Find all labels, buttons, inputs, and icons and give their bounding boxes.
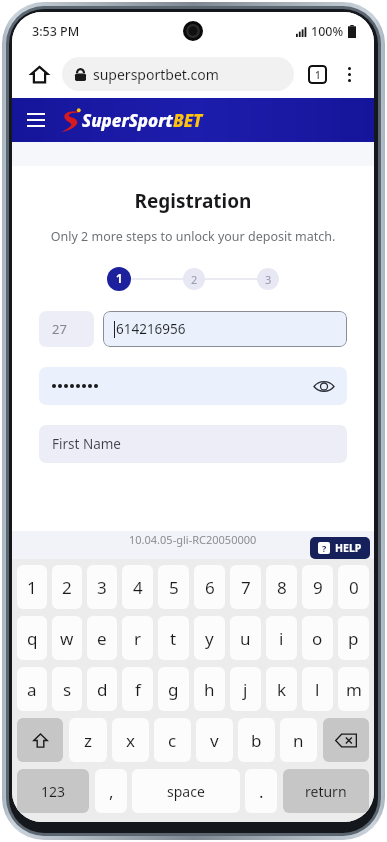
- button[interactable]: t: [158, 616, 189, 660]
- staticText: z: [84, 729, 92, 752]
- button[interactable]: return: [283, 769, 369, 813]
- button[interactable]: Home: [22, 57, 56, 91]
- staticText: Only 2 more steps to unlock your deposit…: [12, 228, 374, 245]
- button[interactable]: 4: [122, 565, 153, 609]
- button[interactable]: Menu: [20, 104, 52, 136]
- button[interactable]: More options: [334, 59, 364, 89]
- button[interactable]: 3: [87, 565, 117, 609]
- button[interactable]: w: [52, 616, 82, 660]
- staticText: First Name: [52, 435, 121, 453]
- button[interactable]: p: [338, 616, 369, 660]
- button[interactable]: 1: [17, 565, 47, 609]
- staticText: return: [305, 782, 347, 801]
- staticText: HELP: [335, 541, 362, 555]
- button[interactable]: s: [52, 667, 82, 711]
- staticText: 1: [315, 68, 321, 82]
- staticText: .: [259, 780, 264, 803]
- staticText: BET: [173, 109, 203, 132]
- staticText: l: [315, 678, 320, 701]
- staticText: supersportbet.com: [93, 65, 219, 84]
- button[interactable]: 5: [158, 565, 189, 609]
- staticText: x: [126, 729, 135, 752]
- staticText: 1: [27, 576, 37, 599]
- button[interactable]: q: [17, 616, 47, 660]
- button[interactable]: 27: [39, 311, 94, 347]
- button[interactable]: space: [132, 769, 240, 813]
- staticText: b: [251, 729, 262, 752]
- staticText: d: [97, 678, 108, 701]
- button[interactable]: 2: [183, 268, 205, 290]
- staticText: 3: [97, 576, 107, 599]
- staticText: c: [168, 729, 177, 752]
- staticText: w: [60, 627, 74, 650]
- staticText: 1: [116, 271, 123, 287]
- staticText: u: [240, 627, 251, 650]
- button[interactable]: 7: [230, 565, 261, 609]
- staticText: r: [134, 627, 142, 650]
- button[interactable]: Tabs, 1 open: [300, 57, 334, 91]
- button[interactable]: z: [69, 718, 107, 762]
- staticText: n: [293, 729, 304, 752]
- button[interactable]: v: [196, 718, 233, 762]
- button[interactable]: supersportbet.com: [62, 57, 294, 91]
- button[interactable]: n: [280, 718, 317, 762]
- button[interactable]: First Name: [39, 425, 347, 463]
- button[interactable]: 614216956: [103, 311, 347, 347]
- staticText: 6: [205, 576, 215, 599]
- button[interactable]: Shift: [17, 718, 63, 762]
- staticText: 614216956: [116, 320, 186, 338]
- staticText: ?: [322, 542, 327, 554]
- button[interactable]: f: [122, 667, 153, 711]
- button[interactable]: 6: [194, 565, 225, 609]
- button[interactable]: ,: [95, 769, 127, 813]
- button[interactable]: d: [87, 667, 117, 711]
- button[interactable]: y: [194, 616, 225, 660]
- staticText: j: [243, 678, 248, 701]
- staticText: v: [210, 729, 219, 752]
- staticText: y: [205, 627, 214, 650]
- button[interactable]: r: [122, 616, 153, 660]
- staticText: k: [277, 678, 287, 701]
- button[interactable]: c: [154, 718, 191, 762]
- button[interactable]: Backspace: [323, 718, 369, 762]
- button[interactable]: k: [266, 667, 297, 711]
- button[interactable]: 2: [52, 565, 82, 609]
- button[interactable]: 0: [338, 565, 369, 609]
- staticText: 4: [133, 576, 143, 599]
- button[interactable]: u: [230, 616, 261, 660]
- button[interactable]: ?: [310, 537, 370, 559]
- staticText: m: [346, 678, 362, 701]
- button[interactable]: Show password: [39, 367, 347, 405]
- staticText: 7: [241, 576, 251, 599]
- button[interactable]: e: [87, 616, 117, 660]
- button[interactable]: x: [112, 718, 149, 762]
- button[interactable]: h: [194, 667, 225, 711]
- button[interactable]: i: [266, 616, 297, 660]
- staticText: g: [168, 678, 179, 701]
- button[interactable]: m: [338, 667, 369, 711]
- staticText: 3: [265, 272, 272, 287]
- staticText: 3:53 PM: [32, 23, 80, 40]
- staticText: 2: [191, 272, 198, 287]
- button[interactable]: a: [17, 667, 47, 711]
- button[interactable]: 3: [257, 268, 279, 290]
- button[interactable]: 1: [107, 267, 131, 291]
- staticText: o: [312, 627, 323, 650]
- staticText: 8: [277, 576, 287, 599]
- staticText: SuperSport: [82, 109, 173, 132]
- button[interactable]: .: [245, 769, 277, 813]
- button[interactable]: g: [158, 667, 189, 711]
- button[interactable]: 9: [302, 565, 333, 609]
- staticText: Registration: [12, 188, 374, 214]
- staticText: i: [279, 627, 284, 650]
- staticText: 100%: [311, 23, 344, 40]
- staticText: q: [27, 627, 38, 650]
- button[interactable]: 8: [266, 565, 297, 609]
- button[interactable]: l: [302, 667, 333, 711]
- button[interactable]: b: [238, 718, 275, 762]
- button[interactable]: 123: [17, 769, 89, 813]
- button[interactable]: Show password: [311, 373, 337, 399]
- button[interactable]: j: [230, 667, 261, 711]
- button[interactable]: o: [302, 616, 333, 660]
- staticText: s: [63, 678, 72, 701]
